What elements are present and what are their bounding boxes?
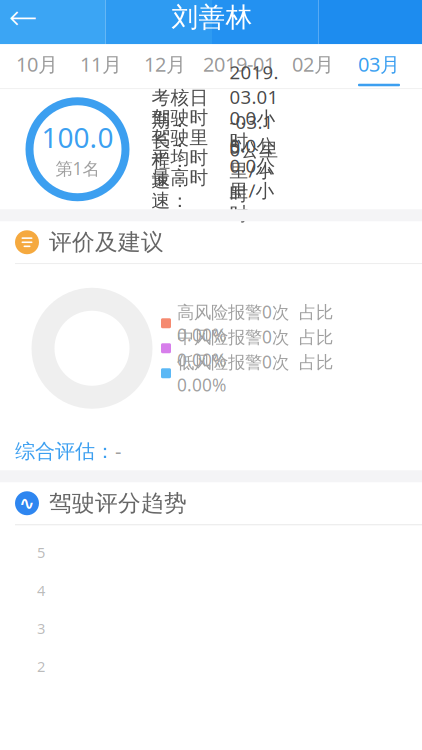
button[interactable]: 10月	[5, 44, 69, 88]
staticText: 2	[37, 656, 45, 676]
staticText: 驾驶时长：	[151, 106, 208, 152]
staticText: 0.0公里/小时	[229, 133, 275, 205]
staticText: 5	[37, 542, 45, 562]
staticText: 3	[37, 618, 45, 638]
staticText: 最高时速：	[151, 166, 208, 212]
staticText: 0公里	[229, 137, 278, 162]
button[interactable]: 11月	[69, 44, 133, 88]
staticText: 第1名	[55, 157, 99, 180]
staticText: 100.0	[41, 119, 113, 156]
button[interactable]: Back	[0, 0, 47, 39]
staticText: 4	[37, 580, 45, 600]
staticText: 0.0公里/小时	[229, 153, 275, 225]
staticText: 中风险报警0次 占比0.00%	[177, 325, 333, 371]
staticText: 12月	[144, 51, 186, 77]
button[interactable]: 12月	[133, 44, 197, 88]
staticText: 高风险报警0次 占比0.00%	[177, 300, 333, 346]
button[interactable]: 2019-01	[197, 44, 281, 88]
staticText: 11月	[80, 51, 122, 77]
staticText: 考核日期：	[151, 86, 208, 132]
staticText: -	[115, 438, 121, 465]
staticText: 0.0小时	[229, 105, 275, 153]
staticText: 驾驶里程：	[151, 126, 208, 172]
staticText: ←	[8, 0, 37, 37]
staticText: 刘善林	[171, 1, 252, 34]
staticText: 2019.03.01-03.15	[229, 60, 278, 159]
staticText: 02月	[292, 51, 334, 77]
staticText: 驾驶评分趋势	[49, 489, 187, 517]
staticText: 评价及建议	[49, 228, 164, 256]
button[interactable]: 02月	[281, 44, 345, 88]
staticText: 03月	[358, 51, 400, 77]
button[interactable]: 03月	[345, 44, 413, 88]
staticText: 10月	[16, 51, 58, 77]
staticText: 2019-01	[203, 51, 275, 77]
staticText: 综合评估：	[15, 439, 115, 464]
staticText: ∿	[19, 493, 35, 514]
staticText: 低风险报警0次 占比0.00%	[177, 350, 333, 396]
staticText: 平均时速：	[151, 146, 208, 192]
